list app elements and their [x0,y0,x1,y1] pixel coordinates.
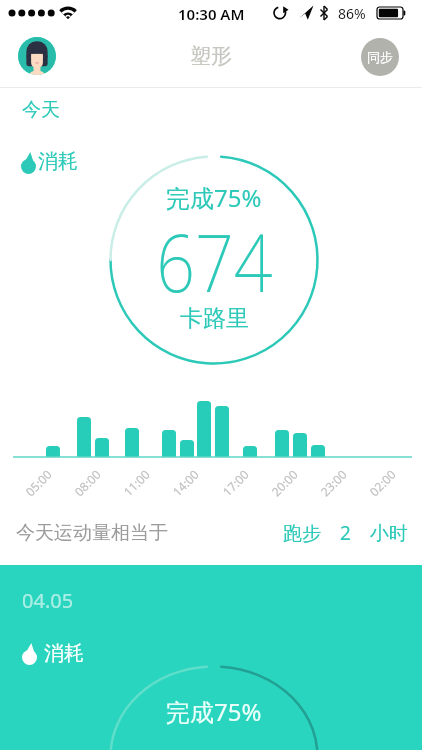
button[interactable] [18,37,56,75]
staticText: 14:00 [169,466,202,499]
staticText: 11:00 [120,466,153,499]
staticText: 86% [338,4,366,23]
staticText: 同步 [367,49,393,65]
staticText: 跑步 2 小时 [283,520,408,546]
button[interactable]: 04.05 [0,565,422,750]
staticText: 04.05 [22,587,74,614]
staticText: 完成75% [166,695,262,728]
staticText: 卡路里 [180,303,249,332]
staticText: 消耗 [38,149,78,174]
staticText: 23:00 [317,466,350,499]
staticText: 今天 [22,98,60,122]
staticText: 02:00 [366,466,399,499]
staticText: 20:00 [268,466,301,499]
button[interactable]: 今天运动量相当于 [16,518,408,548]
staticText: 05:00 [22,466,55,499]
staticText: 消耗 [44,641,84,666]
staticText: 17:00 [219,466,252,499]
staticText: 674 [156,205,273,314]
staticText: 08:00 [71,466,104,499]
staticText: 完成75% [166,180,262,213]
staticText: 今天运动量相当于 [16,521,168,545]
button[interactable]: 同步 [361,38,399,76]
staticText: 塑形 [190,43,232,69]
staticText: 10:30 AM [178,4,245,24]
